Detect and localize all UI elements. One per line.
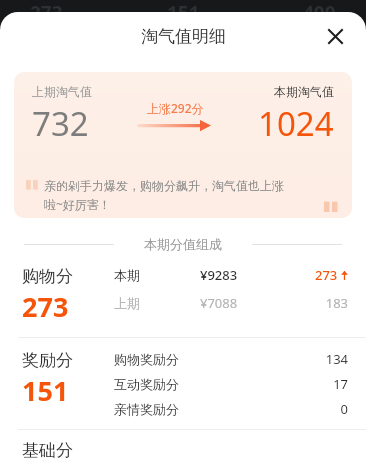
staticText: ¥9283: [200, 266, 290, 284]
button[interactable]: 上期淘气值: [14, 72, 352, 218]
staticText: 淘气值明细: [141, 26, 226, 47]
staticText: 购物分: [22, 266, 73, 287]
staticText: 本期: [114, 267, 200, 283]
staticText: 400: [303, 0, 336, 14]
staticText: 732: [32, 101, 89, 146]
staticText: 273: [22, 288, 69, 325]
staticText: 亲情奖励分: [114, 401, 340, 417]
staticText: 151: [22, 372, 69, 409]
staticText: 0: [340, 400, 348, 418]
staticText: 上涨292分: [147, 100, 204, 116]
staticText: 上期: [114, 295, 200, 311]
button[interactable]: 奖励分: [22, 350, 348, 418]
staticText: ¥7088: [200, 294, 290, 312]
button[interactable]: 基础分: [22, 440, 348, 458]
staticText: 购物奖励分: [114, 351, 325, 367]
button[interactable]: Close: [322, 23, 348, 49]
staticText: 183: [290, 294, 348, 312]
staticText: 基础分: [22, 440, 73, 458]
staticText: 1024: [258, 101, 334, 146]
button[interactable]: 购物分: [22, 266, 348, 325]
staticText: 151: [167, 0, 200, 14]
staticText: 273: [30, 0, 63, 14]
staticText: 奖励分: [22, 350, 73, 371]
staticText: 上期淘气值: [32, 84, 92, 99]
staticText: 本期淘气值: [274, 84, 334, 99]
staticText: 134: [325, 350, 348, 368]
staticText: 17: [333, 375, 348, 393]
staticText: 273: [315, 266, 338, 284]
staticText: 亲的剁手力爆发，购物分飙升，淘气值也上涨啦~好厉害！: [44, 178, 294, 212]
staticText: 互动奖励分: [114, 376, 333, 392]
staticText: 本期分值组成: [144, 236, 222, 252]
